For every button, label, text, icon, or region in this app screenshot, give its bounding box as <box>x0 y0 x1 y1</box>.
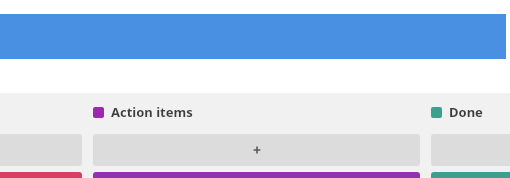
button[interactable]: Done <box>431 102 483 122</box>
staticText: Done <box>449 103 483 121</box>
button[interactable]: Card <box>431 172 510 178</box>
button[interactable]: Add a card <box>93 134 420 166</box>
button[interactable]: Action items <box>93 102 193 122</box>
button[interactable]: Card <box>93 172 420 178</box>
staticText: Action items <box>111 103 193 121</box>
button[interactable]: Card <box>0 172 82 178</box>
